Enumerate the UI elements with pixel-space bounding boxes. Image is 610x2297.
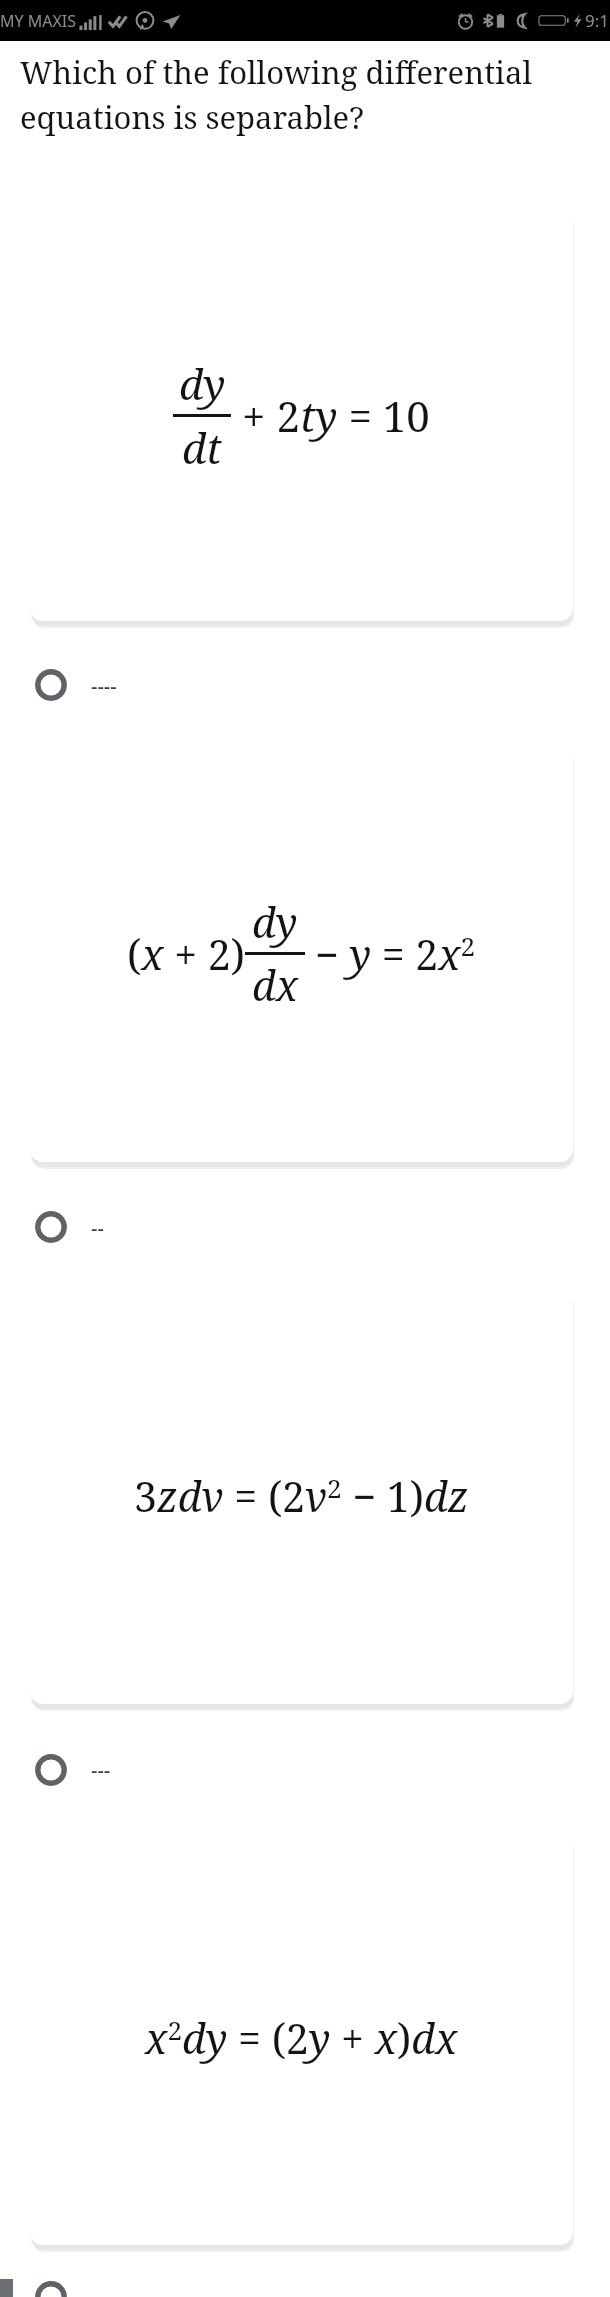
button[interactable]: dy: [30, 209, 573, 626]
staticText: ---: [91, 1756, 111, 1783]
staticText: + 2ty = 10: [242, 387, 430, 444]
staticText: dy: [252, 894, 298, 950]
button[interactable]: Select answer option D: [0, 2250, 610, 2297]
staticText: dx: [252, 957, 299, 1013]
button[interactable]: Select answer option B: [0, 1167, 610, 1287]
button[interactable]: 3zdv = (2v2 − 1)dz: [30, 1287, 573, 1709]
staticText: 3zdv = (2v2 − 1)dz: [134, 1468, 469, 1524]
button[interactable]: (x + 2): [30, 744, 573, 1167]
button[interactable]: Select answer option A: [0, 626, 610, 744]
staticText: dy: [179, 355, 226, 412]
staticText: 9:1: [585, 9, 610, 32]
button[interactable]: x2dy = (2y + x)dx: [30, 1830, 573, 2250]
staticText: ----: [91, 672, 117, 699]
staticText: Which of the following differential equa…: [20, 51, 598, 138]
staticText: --: [91, 1214, 104, 1241]
staticText: − y = 2x2: [315, 926, 476, 982]
button[interactable]: Select answer option C: [0, 1709, 610, 1830]
staticText: (x + 2): [127, 926, 245, 982]
staticText: MY MAXIS: [0, 10, 77, 32]
staticText: x2dy = (2y + x)dx: [145, 2010, 458, 2066]
staticText: dt: [182, 419, 222, 476]
